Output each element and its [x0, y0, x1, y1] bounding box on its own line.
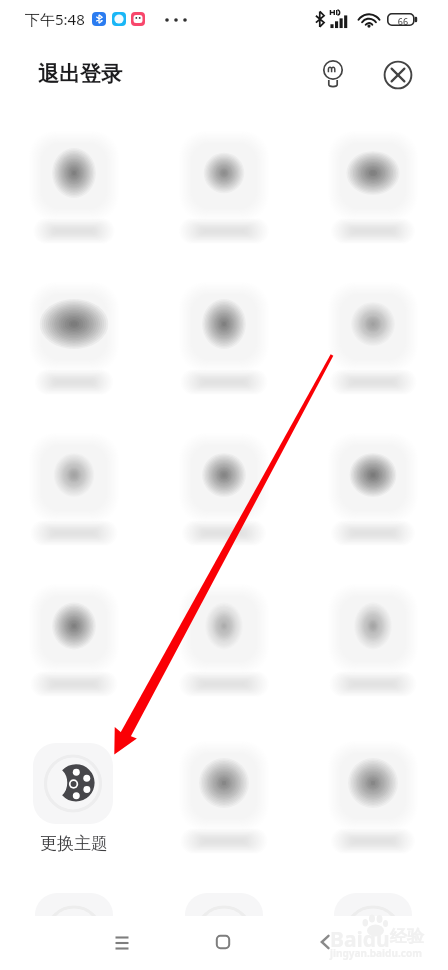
- staticText: 退出登录: [38, 61, 122, 87]
- staticText: 更换主题: [28, 833, 120, 854]
- button[interactable]: Back: [303, 920, 347, 964]
- button[interactable]: [33, 743, 113, 824]
- button[interactable]: Recent apps: [100, 921, 144, 965]
- staticText: jingyan.baidu.com: [330, 946, 422, 960]
- staticText: 下午5:48: [25, 9, 85, 29]
- button[interactable]: Home: [201, 920, 245, 964]
- button[interactable]: Tips: [311, 52, 355, 96]
- staticText: Baidu: [330, 925, 390, 954]
- button[interactable]: Close: [376, 52, 420, 96]
- staticText: 经验: [390, 926, 424, 947]
- staticText: 66: [395, 15, 411, 27]
